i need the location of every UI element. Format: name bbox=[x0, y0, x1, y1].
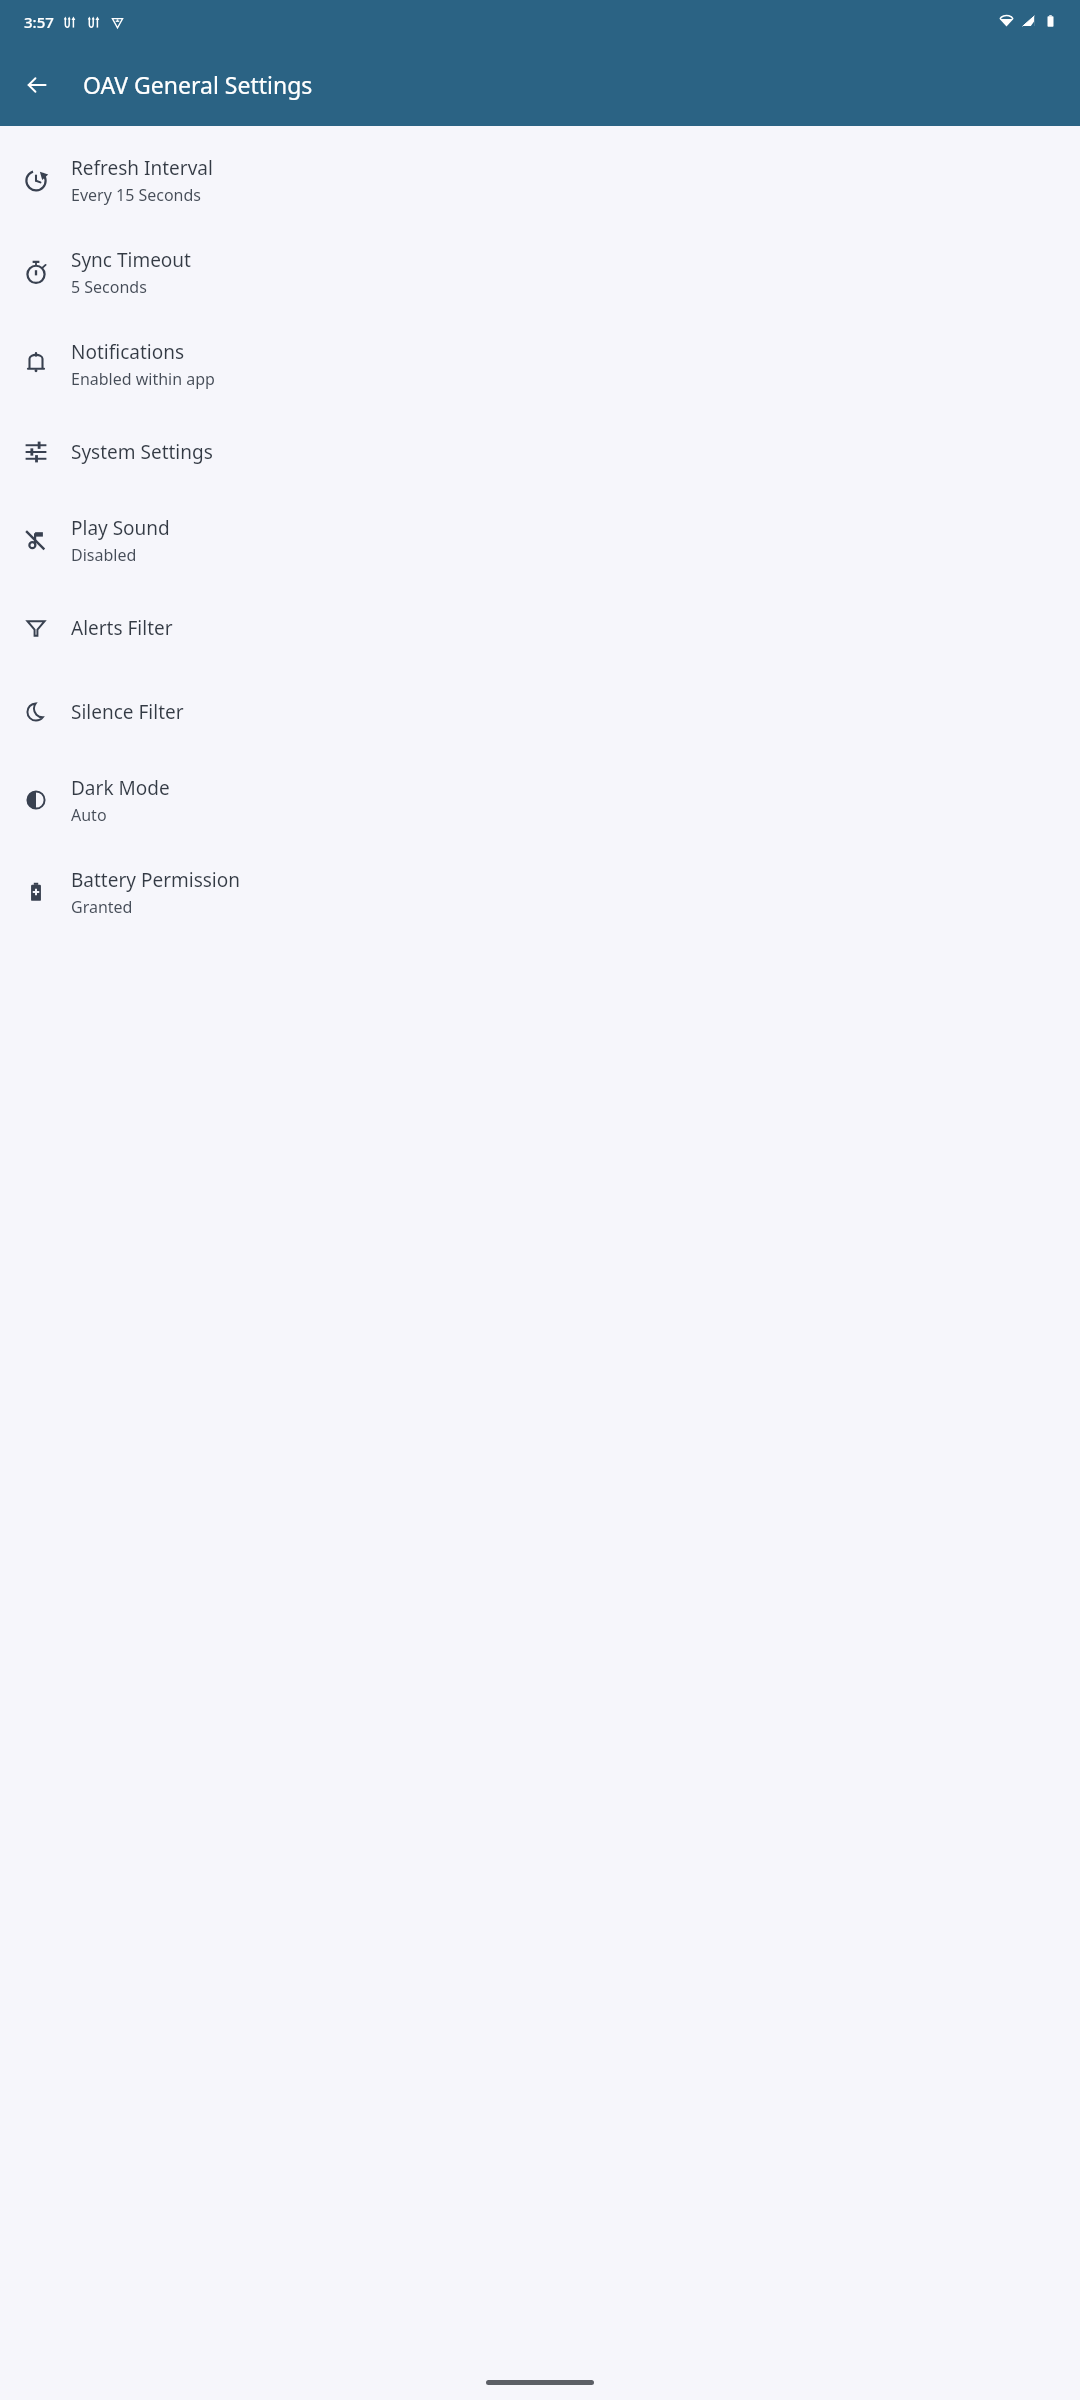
button[interactable]: Dark Mode bbox=[0, 754, 1080, 846]
staticText: Silence Filter bbox=[71, 699, 184, 725]
button[interactable]: Alerts Filter bbox=[0, 586, 1080, 670]
button[interactable]: Silence Filter bbox=[0, 670, 1080, 754]
button[interactable]: Play Sound bbox=[0, 494, 1080, 586]
staticText: Enabled within app bbox=[71, 368, 215, 390]
button[interactable]: Sync Timeout bbox=[0, 226, 1080, 318]
staticText: Disabled bbox=[71, 544, 137, 566]
staticText: Alerts Filter bbox=[71, 615, 173, 641]
button[interactable]: Notifications bbox=[0, 318, 1080, 410]
staticText: 3:57 bbox=[24, 12, 54, 32]
staticText: Auto bbox=[71, 804, 107, 826]
button[interactable]: Battery Permission bbox=[0, 846, 1080, 938]
button[interactable]: Back bbox=[13, 61, 61, 109]
staticText: Refresh Interval bbox=[71, 155, 213, 181]
staticText: Dark Mode bbox=[71, 775, 170, 801]
staticText: Play Sound bbox=[71, 515, 170, 541]
staticText: 5 Seconds bbox=[71, 276, 147, 298]
staticText: System Settings bbox=[71, 439, 213, 465]
button[interactable]: System Settings bbox=[0, 410, 1080, 494]
staticText: Notifications bbox=[71, 339, 185, 365]
staticText: Granted bbox=[71, 896, 133, 918]
staticText: Every 15 Seconds bbox=[71, 184, 202, 206]
staticText: Battery Permission bbox=[71, 867, 240, 893]
staticText: Sync Timeout bbox=[71, 247, 191, 273]
staticText: OAV General Settings bbox=[83, 69, 313, 100]
button[interactable]: Refresh Interval bbox=[0, 134, 1080, 226]
